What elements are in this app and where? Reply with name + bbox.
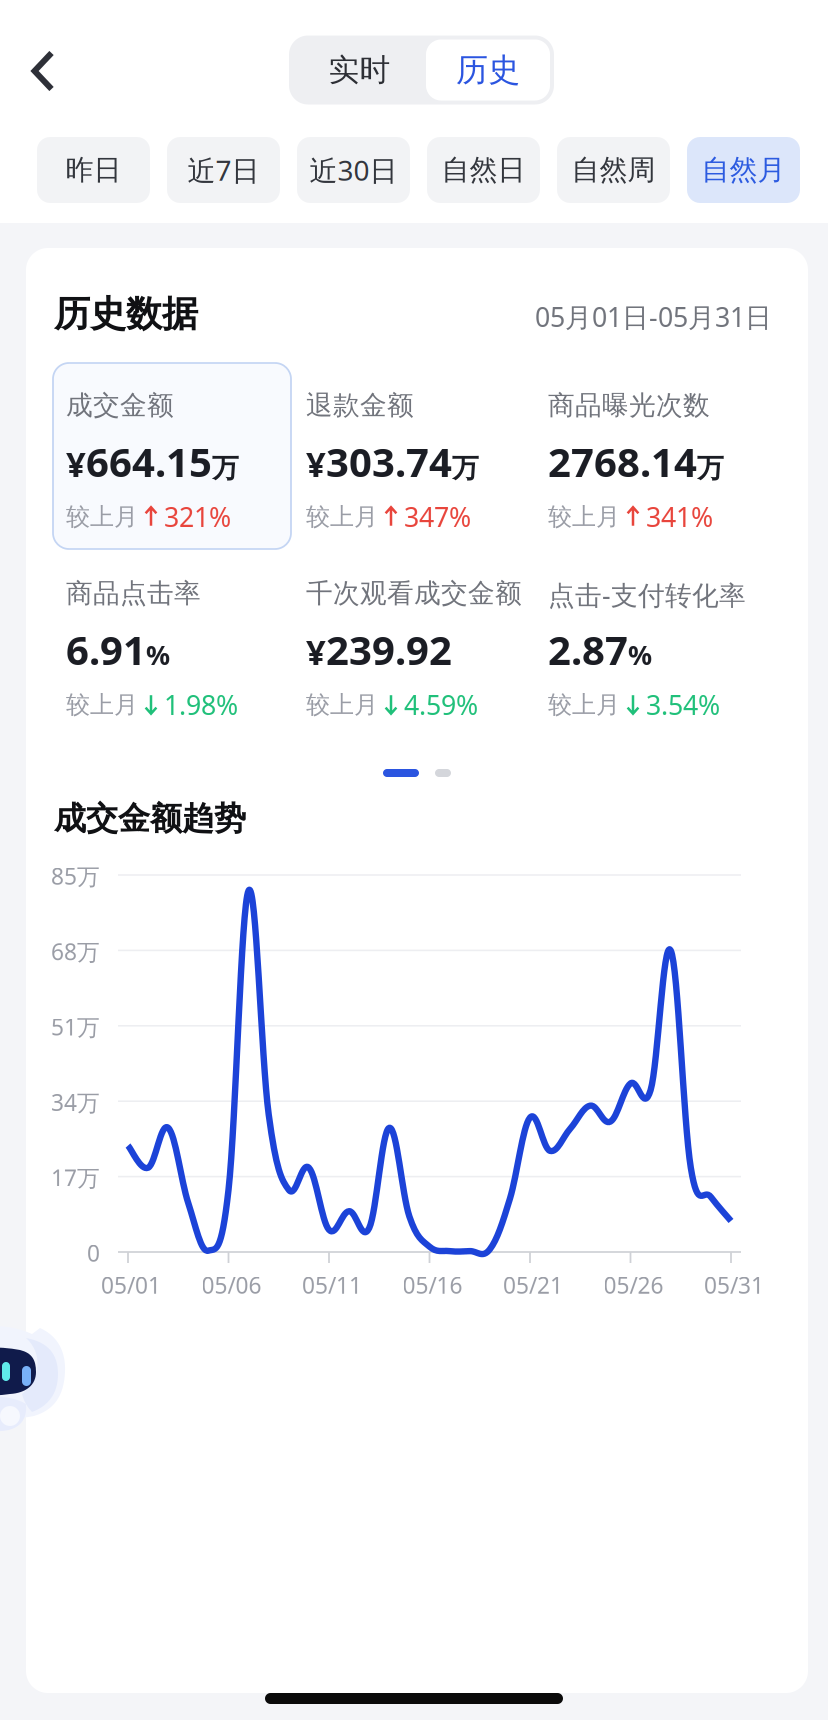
button[interactable]: 实时 (293, 40, 426, 100)
staticText: 05/06 (201, 1270, 261, 1300)
staticText: 51万 (51, 1012, 100, 1042)
button[interactable]: 近30日 (297, 137, 410, 203)
staticText: 303.74 (326, 435, 452, 488)
staticText: % (146, 637, 170, 672)
staticText: 较上月 (306, 502, 378, 531)
staticText: 85万 (51, 861, 100, 891)
button[interactable]: Back (5, 36, 81, 106)
staticText: 4.59% (404, 687, 478, 722)
staticText: 05/31 (704, 1270, 764, 1300)
staticText: 239.92 (326, 623, 452, 676)
staticText: 千次观看成交金额 (306, 577, 522, 610)
staticText: 万 (697, 452, 724, 485)
staticText: 昨日 (65, 153, 121, 187)
button[interactable]: 近7日 (167, 137, 280, 203)
staticText: 成交金额趋势 (54, 799, 246, 838)
button[interactable]: 昨日 (37, 137, 150, 203)
staticText: 341% (646, 499, 713, 534)
staticText: 17万 (51, 1162, 100, 1193)
staticText: 近7日 (187, 151, 259, 189)
staticText: 商品点击率 (66, 577, 201, 610)
staticText: 05/21 (503, 1270, 563, 1300)
staticText: 历史数据 (54, 292, 198, 336)
staticText: 321% (164, 499, 231, 534)
staticText: 05月01日-05月31日 (535, 299, 772, 334)
staticText: 较上月 (66, 690, 138, 719)
button[interactable]: 自然月 (687, 137, 800, 203)
staticText: 2768.14 (548, 435, 697, 488)
staticText: 1.98% (164, 687, 238, 722)
staticText: 34万 (51, 1087, 100, 1117)
staticText: 2.87 (548, 623, 628, 676)
staticText: 3.54% (646, 687, 720, 722)
staticText: 近30日 (309, 151, 397, 189)
staticText: 万 (452, 452, 479, 485)
staticText: 0 (87, 1238, 100, 1268)
staticText: 664.15 (86, 435, 212, 488)
staticText: 商品曝光次数 (548, 389, 710, 422)
button[interactable]: 自然周 (557, 137, 670, 203)
button[interactable]: 历史 (426, 39, 550, 100)
staticText: 成交金额 (66, 389, 174, 422)
staticText: 历史 (456, 50, 520, 90)
staticText: 点击-支付转化率 (548, 577, 746, 612)
staticText: 05/11 (302, 1270, 362, 1300)
staticText: 347% (404, 499, 471, 534)
staticText: 自然日 (441, 153, 525, 187)
staticText: 05/16 (402, 1270, 462, 1300)
staticText: 较上月 (548, 690, 620, 719)
staticText: 实时 (328, 51, 390, 89)
staticText: 退款金额 (306, 389, 414, 422)
staticText: 自然月 (701, 153, 785, 187)
staticText: 万 (212, 452, 239, 485)
staticText: 较上月 (66, 502, 138, 531)
staticText: ¥ (306, 629, 326, 675)
staticText: ¥ (66, 441, 86, 487)
staticText: % (628, 637, 652, 672)
staticText: 6.91 (66, 623, 146, 676)
staticText: ¥ (306, 441, 326, 487)
staticText: 68万 (51, 936, 100, 966)
staticText: 较上月 (306, 690, 378, 719)
button[interactable]: AI assistant (0, 1320, 78, 1432)
staticText: 05/01 (101, 1270, 161, 1300)
staticText: 自然周 (571, 153, 655, 187)
button[interactable]: 自然日 (427, 137, 540, 203)
staticText: 较上月 (548, 502, 620, 531)
staticText: 05/26 (603, 1270, 663, 1300)
